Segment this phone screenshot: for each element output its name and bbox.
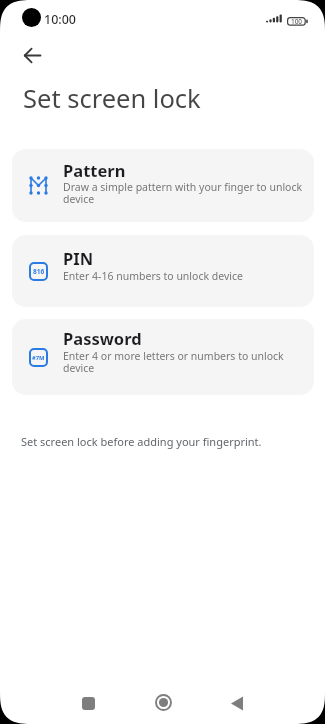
staticText: Pattern bbox=[63, 159, 126, 181]
button[interactable]: 816 bbox=[12, 235, 314, 307]
staticText: 816 bbox=[33, 267, 45, 276]
staticText: #7M bbox=[32, 354, 45, 362]
staticText: Password bbox=[63, 327, 142, 349]
staticText: Set screen lock before adding your finge… bbox=[21, 434, 262, 449]
staticText: Draw a simple pattern with your finger t… bbox=[63, 180, 303, 206]
staticText: Enter 4 or more letters or numbers to un… bbox=[63, 349, 284, 375]
button[interactable]: Pattern bbox=[12, 149, 314, 222]
staticText: PIN bbox=[63, 247, 94, 269]
staticText: 10:00 bbox=[44, 11, 77, 28]
button[interactable]: #7M bbox=[12, 319, 314, 395]
button[interactable] bbox=[14, 37, 50, 73]
staticText: 100 bbox=[290, 17, 303, 26]
button[interactable] bbox=[70, 685, 106, 721]
button[interactable] bbox=[219, 685, 255, 721]
staticText: Set screen lock bbox=[23, 81, 201, 116]
staticText: Enter 4-16 numbers to unlock device bbox=[63, 269, 243, 283]
button[interactable] bbox=[145, 684, 181, 720]
